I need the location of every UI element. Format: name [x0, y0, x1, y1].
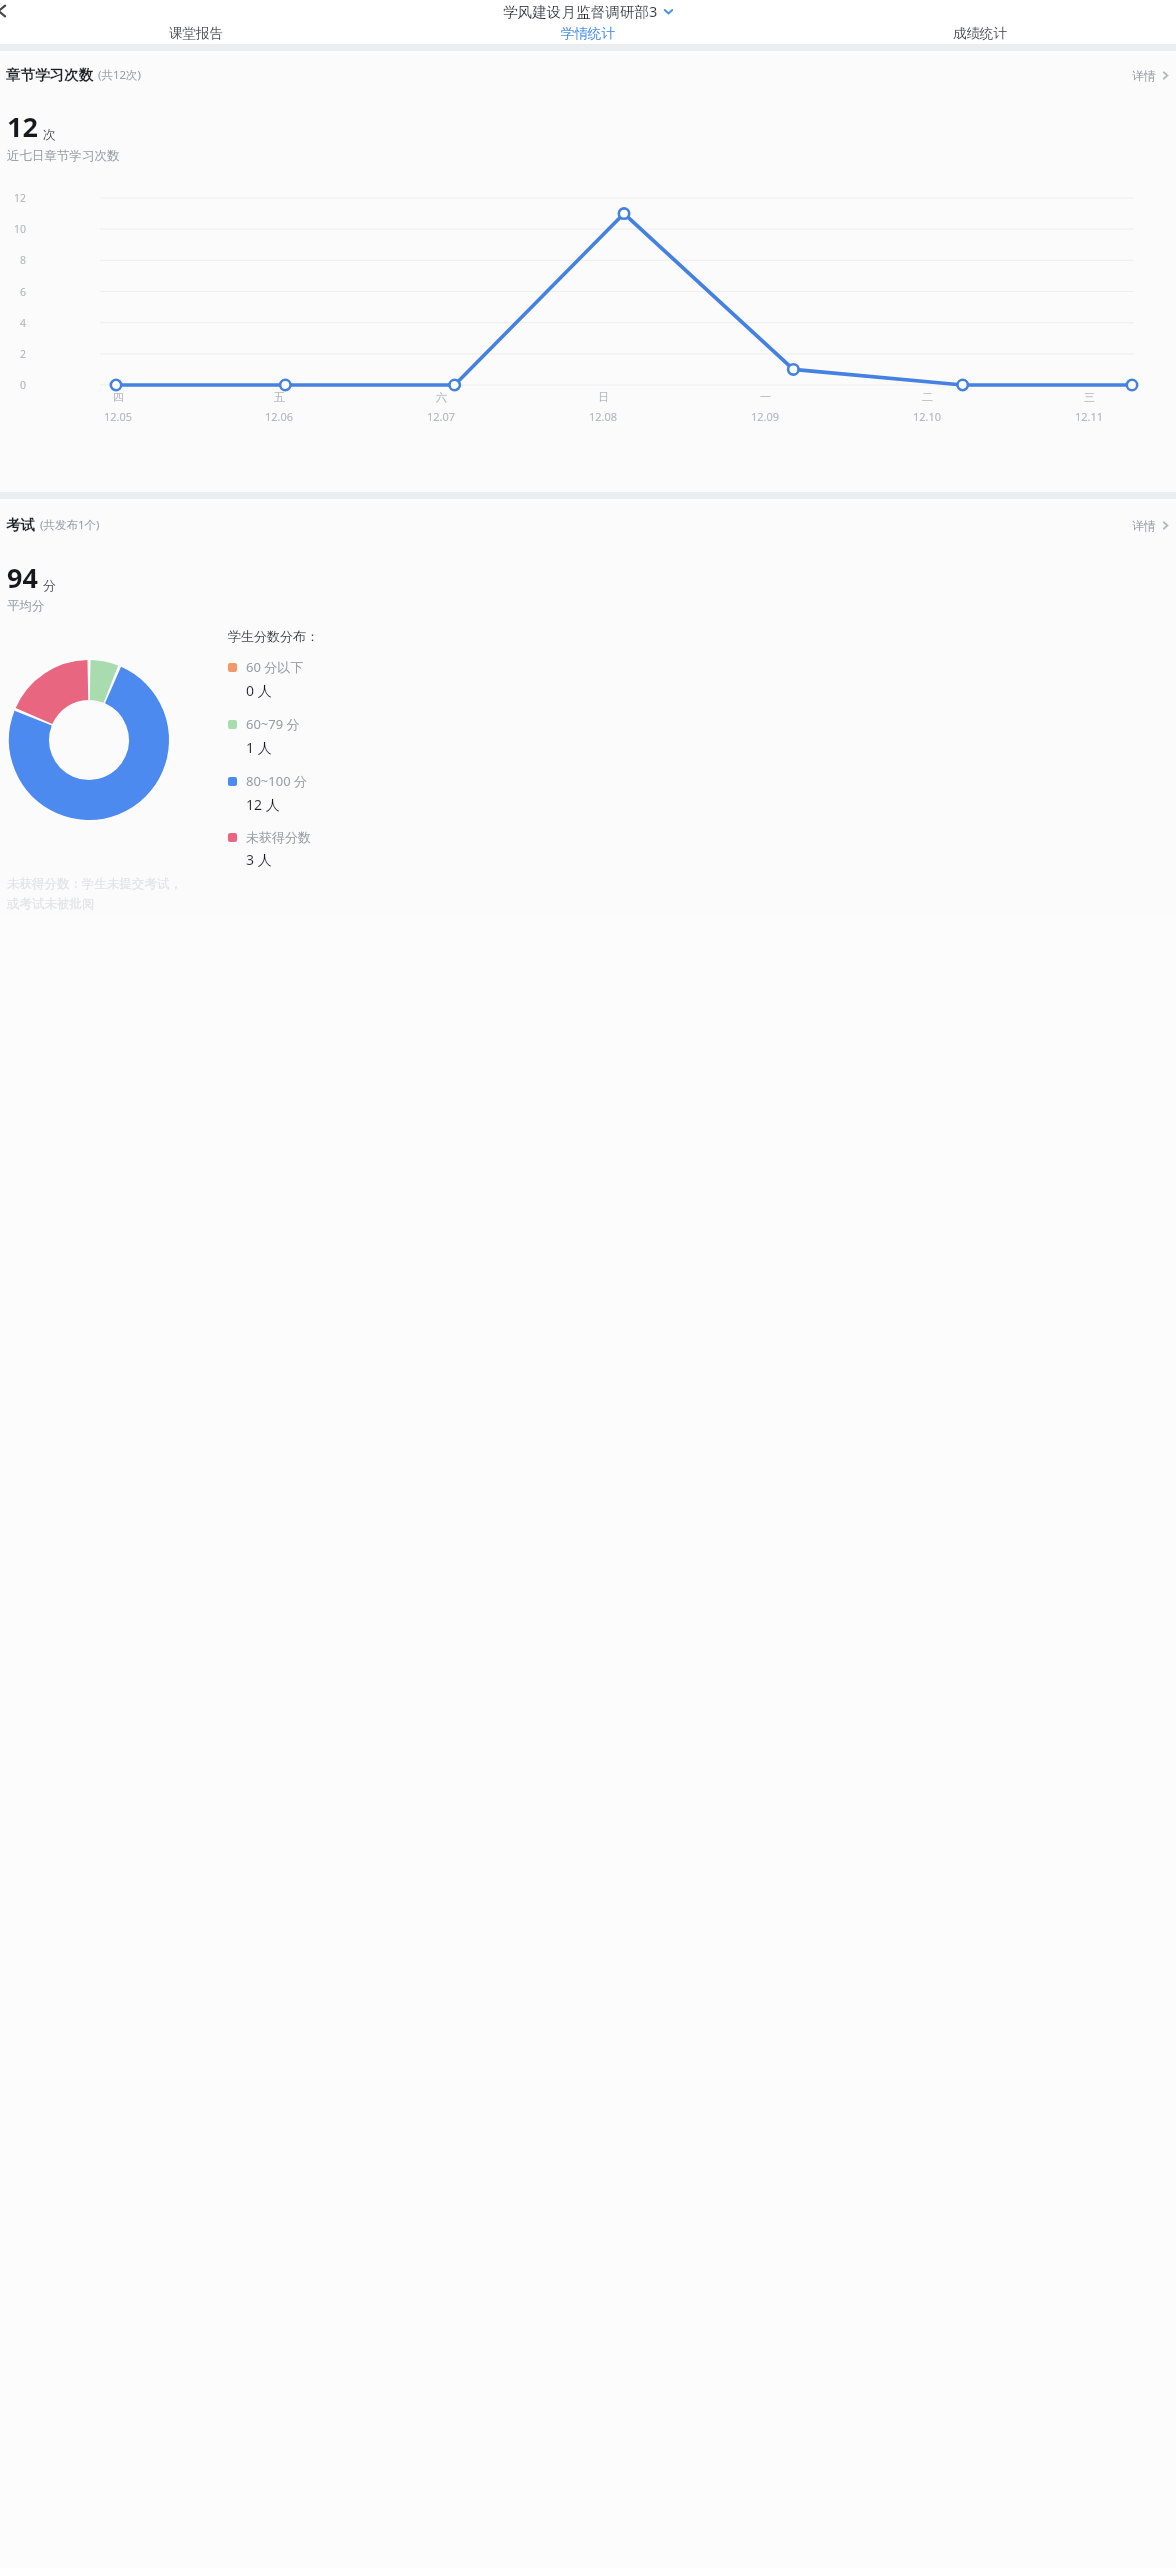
button[interactable]: 学情统计: [392, 21, 784, 44]
staticText: 成绩统计: [953, 25, 1007, 42]
staticText: 学情统计: [561, 25, 615, 42]
staticText: 日: [598, 390, 609, 404]
staticText: 0: [0, 378, 26, 392]
staticText: 学生分数分布：: [228, 628, 319, 644]
staticText: 12.10: [913, 409, 942, 424]
staticText: 60 分以下: [246, 658, 304, 676]
staticText: 详情: [1132, 68, 1156, 83]
button[interactable]: 课堂报告: [0, 21, 392, 44]
button[interactable]: Back: [0, 1, 12, 21]
staticText: 平均分: [7, 598, 45, 614]
button[interactable]: 详情: [1132, 518, 1170, 533]
staticText: 60~79 分: [246, 715, 300, 733]
staticText: 12: [7, 108, 38, 145]
staticText: 2: [0, 347, 26, 361]
staticText: 10: [0, 222, 26, 236]
staticText: (共发布1个): [40, 517, 100, 533]
staticText: 六: [436, 390, 447, 404]
staticText: 三: [1084, 390, 1095, 404]
staticText: 12 人: [246, 795, 280, 814]
staticText: 12.08: [589, 409, 618, 424]
staticText: 分: [43, 577, 56, 593]
staticText: 0 人: [246, 681, 272, 700]
staticText: 一: [760, 390, 771, 404]
staticText: 4: [0, 316, 26, 330]
staticText: 次: [43, 126, 56, 142]
staticText: 未获得分数: [246, 829, 311, 845]
button[interactable]: 详情: [1132, 68, 1170, 83]
staticText: 或考试未被批阅: [7, 896, 95, 912]
staticText: (共12次): [98, 67, 142, 83]
staticText: 3 人: [246, 850, 272, 869]
staticText: 6: [0, 285, 26, 299]
staticText: 四: [113, 390, 124, 404]
staticText: 94: [7, 559, 38, 596]
staticText: 12.09: [751, 409, 780, 424]
button[interactable]: 成绩统计: [784, 21, 1176, 44]
staticText: 1 人: [246, 738, 272, 757]
staticText: 二: [922, 390, 933, 404]
staticText: 详情: [1132, 518, 1156, 533]
staticText: 12: [0, 191, 26, 205]
staticText: 12.05: [104, 409, 133, 424]
staticText: 考试: [6, 516, 35, 534]
staticText: 8: [0, 253, 26, 267]
staticText: 学风建设月监督调研部3: [503, 1, 658, 21]
staticText: 12.07: [427, 409, 456, 424]
staticText: 12.06: [265, 409, 294, 424]
button[interactable]: 学风建设月监督调研部3: [503, 1, 674, 21]
staticText: 五: [274, 390, 285, 404]
staticText: 近七日章节学习次数: [7, 148, 120, 164]
staticText: 未获得分数：学生未提交考试，: [7, 876, 182, 892]
staticText: 80~100 分: [246, 772, 307, 790]
staticText: 课堂报告: [169, 25, 223, 42]
staticText: 12.11: [1075, 409, 1104, 424]
staticText: 章节学习次数: [6, 66, 93, 84]
